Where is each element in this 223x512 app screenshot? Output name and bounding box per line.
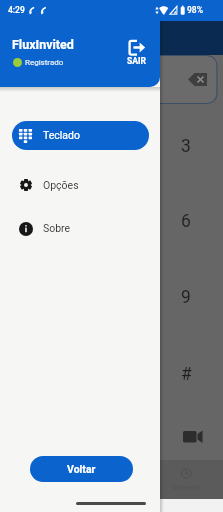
button[interactable]: Sobre	[12, 214, 149, 243]
staticText: SAIR	[127, 56, 147, 66]
button[interactable]: Sair	[124, 34, 150, 70]
staticText: FluxInvited	[12, 37, 74, 52]
staticText: 3	[181, 136, 191, 157]
button[interactable]: #	[172, 360, 200, 388]
button[interactable]: Voltar	[30, 456, 133, 482]
staticText: 98%	[187, 5, 203, 15]
staticText: #	[181, 364, 192, 385]
staticText: Sobre	[43, 222, 71, 234]
button[interactable]: 9	[172, 283, 200, 311]
staticText: 6	[181, 211, 191, 232]
staticText: 4:29	[8, 5, 25, 15]
button[interactable]: 3	[172, 132, 200, 160]
button[interactable]: Opções	[12, 171, 149, 200]
staticText: Registrado	[25, 58, 64, 67]
staticText: Opções	[43, 179, 79, 191]
staticText: Voltar	[67, 463, 96, 475]
staticText: Teclado	[43, 129, 80, 141]
button[interactable]: 6	[172, 207, 200, 235]
button[interactable]: Teclado	[12, 121, 149, 150]
staticText: 9	[181, 287, 191, 308]
